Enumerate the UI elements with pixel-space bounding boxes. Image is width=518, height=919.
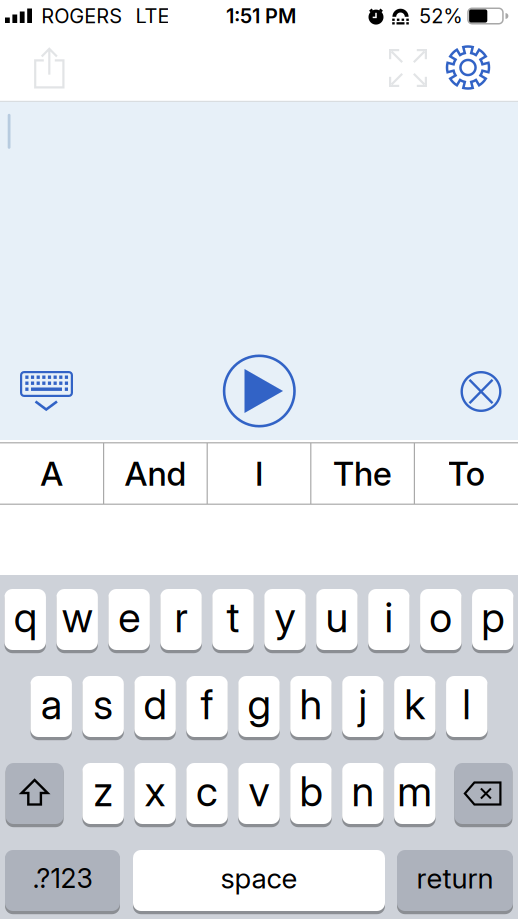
button[interactable]: space — [133, 850, 385, 913]
button[interactable]: a — [30, 676, 72, 739]
staticText: space — [220, 861, 297, 895]
staticText: d — [144, 679, 167, 729]
button[interactable]: r — [160, 589, 202, 652]
button[interactable]: l — [446, 676, 487, 739]
staticText: 1:51 PM — [226, 4, 296, 28]
button[interactable]: Shift — [6, 763, 64, 826]
button[interactable]: I — [207, 442, 311, 505]
staticText: i — [384, 592, 393, 642]
staticText: m — [397, 766, 432, 816]
staticText: o — [429, 592, 452, 642]
staticText: .?123 — [32, 862, 92, 894]
button[interactable]: A — [0, 442, 104, 505]
staticText: The — [333, 453, 392, 494]
staticText: A — [40, 453, 63, 494]
staticText: b — [299, 766, 322, 816]
button[interactable]: t — [212, 589, 254, 652]
button[interactable]: Speak — [223, 354, 296, 427]
button[interactable]: Delete — [454, 763, 512, 826]
button[interactable]: Dismiss keyboard — [18, 370, 75, 412]
button[interactable]: And — [104, 442, 207, 505]
staticText: g — [247, 679, 270, 729]
button[interactable]: z — [82, 763, 124, 826]
staticText: k — [404, 679, 425, 729]
button[interactable]: j — [342, 676, 384, 739]
staticText: h — [299, 679, 322, 729]
button[interactable]: n — [342, 763, 384, 826]
staticText: a — [41, 679, 62, 729]
button[interactable]: s — [82, 676, 124, 739]
staticText: w — [62, 592, 93, 642]
staticText: j — [358, 679, 367, 729]
button[interactable]: return — [397, 850, 513, 913]
button[interactable]: q — [4, 589, 46, 652]
button[interactable]: f — [186, 676, 228, 739]
staticText: 52% — [419, 4, 462, 28]
staticText: return — [416, 861, 493, 895]
button[interactable]: v — [238, 763, 280, 826]
staticText: q — [14, 592, 37, 642]
button[interactable]: m — [394, 763, 436, 826]
staticText: r — [175, 592, 188, 642]
button[interactable]: The — [311, 442, 414, 505]
button[interactable]: To — [414, 442, 518, 505]
button[interactable]: d — [134, 676, 176, 739]
button[interactable]: Clear text — [458, 369, 503, 414]
button[interactable]: c — [186, 763, 228, 826]
button[interactable]: k — [394, 676, 436, 739]
staticText: z — [93, 766, 113, 816]
button[interactable]: o — [420, 589, 462, 652]
button[interactable]: Share — [34, 47, 64, 88]
button[interactable]: h — [290, 676, 332, 739]
staticText: x — [145, 766, 166, 816]
button[interactable]: b — [290, 763, 332, 826]
button[interactable]: u — [316, 589, 358, 652]
staticText: t — [226, 592, 239, 642]
staticText: y — [274, 592, 295, 642]
staticText: l — [462, 679, 471, 729]
staticText: s — [93, 679, 113, 729]
staticText: e — [118, 592, 140, 642]
staticText: p — [481, 592, 504, 642]
staticText: u — [325, 592, 348, 642]
button[interactable]: p — [472, 589, 513, 652]
button[interactable]: .?123 — [5, 850, 120, 913]
button[interactable]: Settings — [445, 44, 491, 90]
staticText: And — [124, 453, 186, 494]
button[interactable]: Enlarge — [389, 49, 427, 87]
button[interactable]: x — [134, 763, 176, 826]
staticText: To — [448, 453, 485, 494]
staticText: ROGERS — [41, 4, 122, 28]
button[interactable]: i — [368, 589, 410, 652]
staticText: n — [351, 766, 374, 816]
staticText: I — [255, 453, 263, 494]
button[interactable]: w — [56, 589, 98, 652]
button[interactable]: g — [238, 676, 280, 739]
staticText: v — [248, 766, 269, 816]
button[interactable]: y — [264, 589, 306, 652]
staticText: f — [201, 679, 214, 729]
staticText: c — [196, 766, 218, 816]
staticText: LTE — [135, 4, 169, 28]
button[interactable]: e — [108, 589, 150, 652]
